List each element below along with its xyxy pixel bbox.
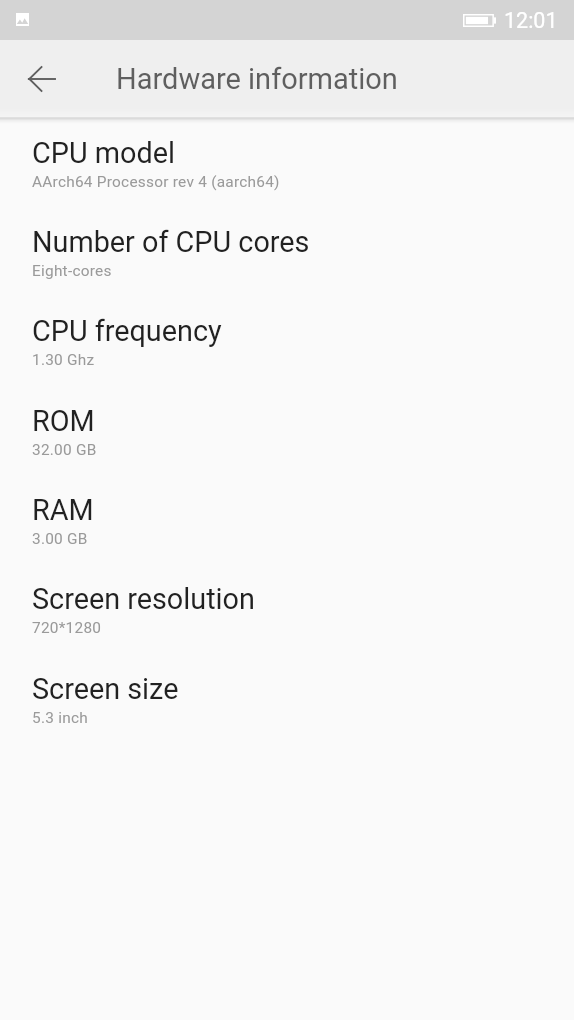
staticText: Hardware information: [116, 62, 398, 96]
staticText: Screen size: [32, 672, 179, 706]
button[interactable]: CPU model: [0, 125, 574, 214]
button[interactable]: Screen resolution: [0, 571, 574, 660]
staticText: ROM: [32, 404, 95, 438]
staticText: Eight-cores: [32, 262, 112, 280]
staticText: Number of CPU cores: [32, 225, 310, 259]
other: Battery: [463, 14, 496, 27]
staticText: 720*1280: [32, 619, 102, 637]
staticText: AArch64 Processor rev 4 (aarch64): [32, 173, 280, 191]
staticText: Screen resolution: [32, 582, 255, 616]
staticText: 5.3 inch: [32, 709, 88, 727]
staticText: 3.00 GB: [32, 530, 88, 548]
staticText: 1.30 Ghz: [32, 351, 95, 369]
button[interactable]: CPU frequency: [0, 303, 574, 392]
staticText: CPU model: [32, 136, 175, 170]
button[interactable]: RAM: [0, 482, 574, 571]
other: Screenshot captured: [16, 13, 29, 26]
button[interactable]: Screen size: [0, 661, 574, 750]
button[interactable]: ROM: [0, 393, 574, 482]
staticText: 12:01: [504, 8, 558, 33]
staticText: 32.00 GB: [32, 441, 97, 459]
button[interactable]: Number of CPU cores: [0, 214, 574, 303]
staticText: CPU frequency: [32, 314, 222, 348]
button[interactable]: Navigate up: [14, 51, 69, 106]
staticText: RAM: [32, 493, 94, 527]
